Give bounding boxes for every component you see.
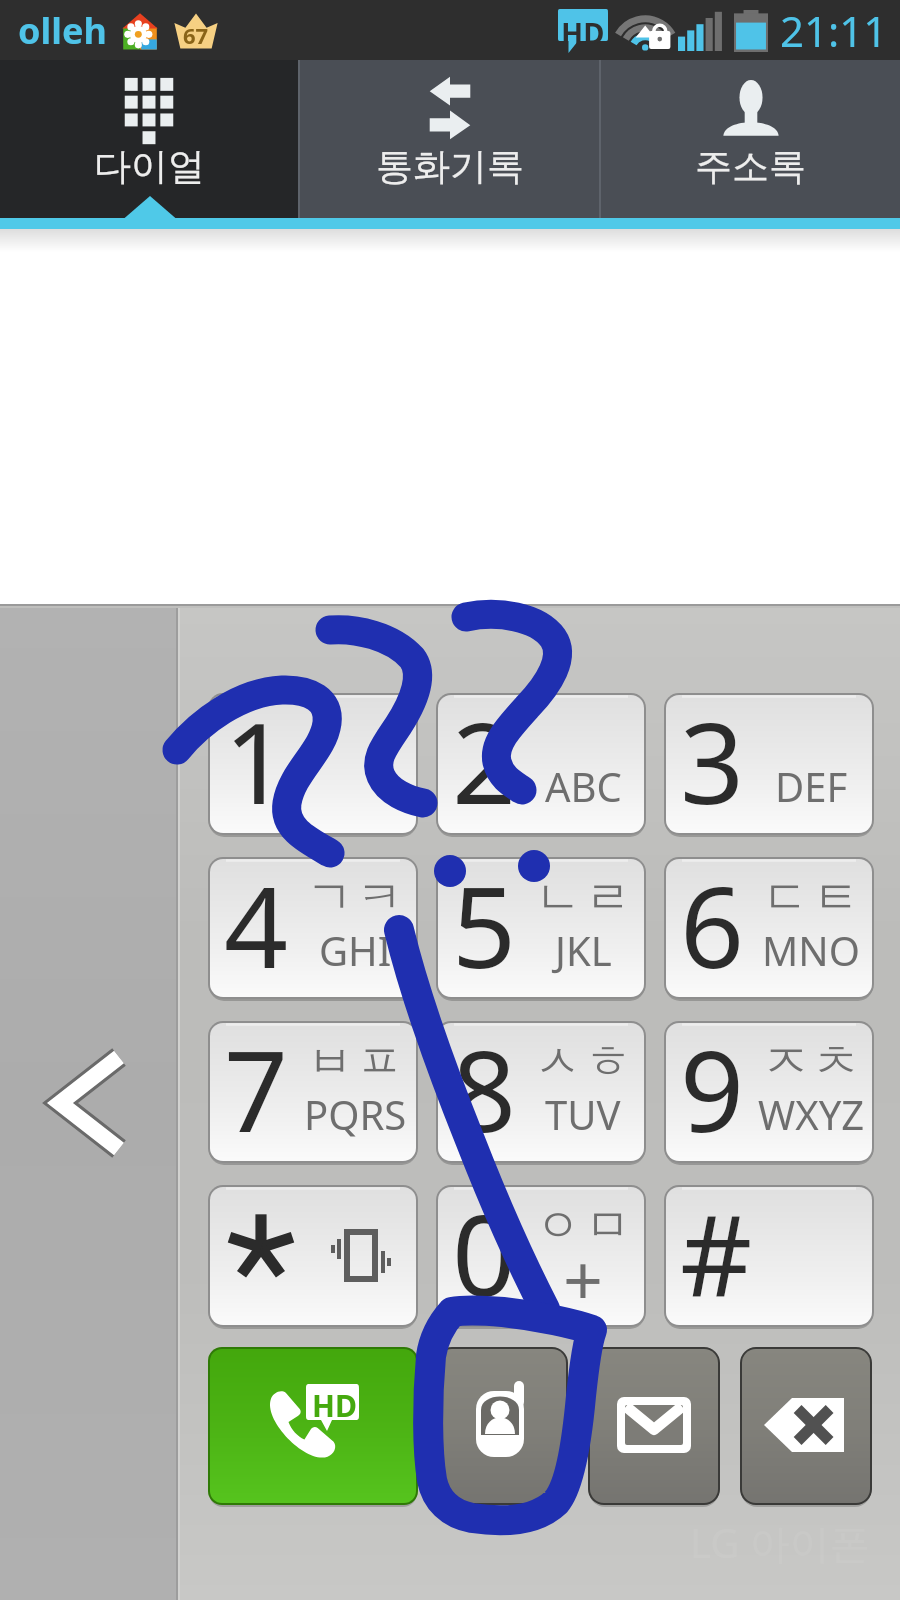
staticText: 5 (452, 848, 517, 990)
staticText: 3 (680, 684, 745, 826)
staticText: ㅁ (585, 1197, 631, 1255)
staticText: 8 (452, 1012, 517, 1154)
staticText: ㄹ (585, 869, 631, 927)
staticText: 21:11 (780, 2, 888, 59)
staticText: ㅌ (813, 869, 859, 927)
staticText: ㅍ (357, 1033, 403, 1091)
staticText: ㅈ (763, 1033, 809, 1091)
button[interactable]: 1 (208, 693, 418, 835)
button[interactable]: 9 (664, 1021, 874, 1163)
button[interactable]: 2 (436, 693, 646, 835)
button[interactable]: 4 (208, 857, 418, 999)
button[interactable]: Collapse keypad (20, 1030, 160, 1180)
button[interactable]: 7 (208, 1021, 418, 1163)
staticText: 통화기록 (376, 143, 524, 190)
button[interactable]: Video call (436, 1347, 568, 1505)
staticText: TUV (545, 1087, 621, 1141)
staticText: ㅎ (585, 1033, 631, 1091)
staticText: ㄱ (307, 869, 353, 927)
staticText: PQRS (304, 1087, 407, 1141)
button[interactable]: 3 (664, 693, 874, 835)
staticText: ㅋ (357, 869, 403, 927)
staticText: ㅇ (535, 1197, 581, 1255)
staticText: 9 (680, 1012, 745, 1154)
staticText: ㄴ (535, 869, 581, 927)
button[interactable] (208, 1185, 418, 1327)
staticText: WXYZ (758, 1087, 865, 1141)
button[interactable]: 5 (436, 857, 646, 999)
button[interactable]: 통화기록 (300, 60, 599, 218)
staticText: JKL (555, 923, 612, 977)
staticText: 주소록 (695, 143, 806, 190)
staticText: 7 (224, 1012, 289, 1154)
staticText: 1 (224, 684, 289, 826)
staticText: ABC (545, 759, 622, 813)
staticText: 0 (452, 1176, 517, 1318)
button[interactable]: 8 (436, 1021, 646, 1163)
staticText: MNO (762, 923, 860, 977)
staticText: 67 (183, 20, 209, 50)
staticText: ㅅ (535, 1033, 581, 1091)
button[interactable]: Call (208, 1347, 418, 1505)
button[interactable]: # (664, 1185, 874, 1327)
button[interactable]: Message (588, 1347, 720, 1505)
staticText: GHI (319, 923, 392, 977)
button[interactable]: Backspace (740, 1347, 872, 1505)
staticText: HD (561, 13, 605, 52)
staticText: DEF (775, 759, 848, 813)
staticText: HD (312, 1385, 357, 1426)
button[interactable]: 6 (664, 857, 874, 999)
staticText: + (563, 1231, 604, 1326)
staticText: 6 (680, 848, 745, 990)
staticText: olleh (18, 6, 107, 55)
staticText: ㅊ (813, 1033, 859, 1091)
button[interactable]: 다이얼 (0, 60, 298, 218)
staticText: 2 (452, 684, 517, 826)
staticText: ㄷ (763, 869, 809, 927)
staticText: 4 (224, 848, 289, 990)
staticText: 다이얼 (94, 143, 205, 190)
button[interactable]: 0 (436, 1185, 646, 1327)
staticText: # (680, 1176, 753, 1318)
staticText: ㅂ (307, 1033, 353, 1091)
button[interactable]: 주소록 (601, 60, 900, 218)
